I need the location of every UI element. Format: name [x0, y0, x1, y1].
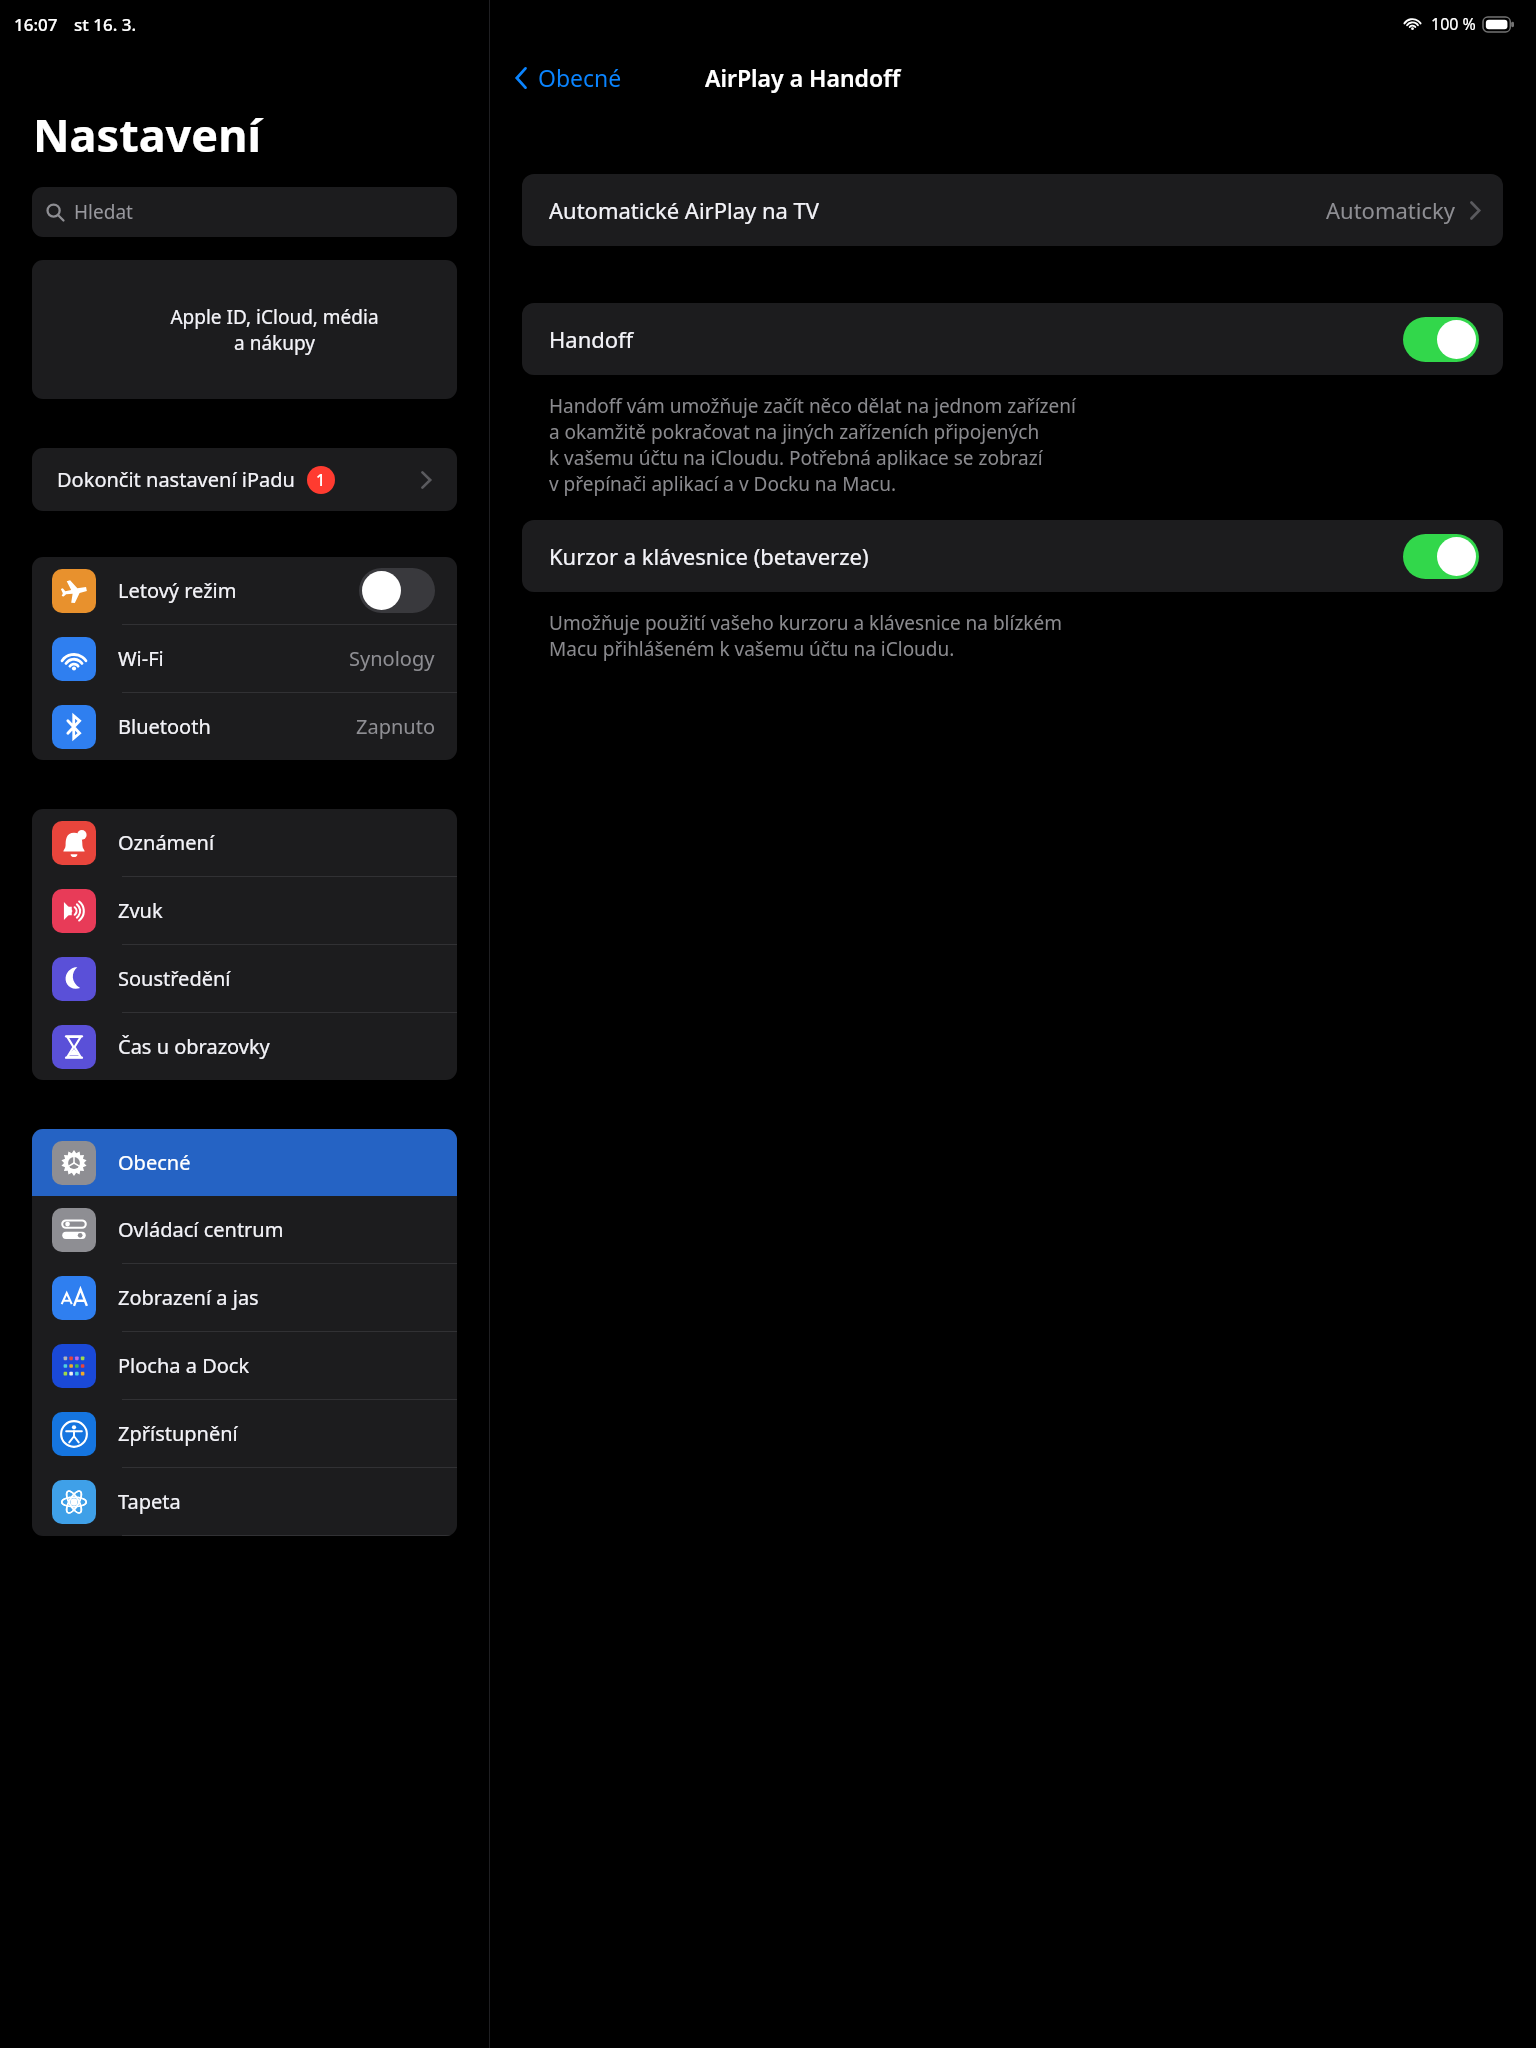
staticText: Zapnuto	[356, 713, 435, 740]
button[interactable]: Soustředění	[32, 945, 457, 1012]
button[interactable]: Plocha a Dock	[32, 1332, 457, 1399]
staticText: Apple ID, iCloud, média a nákupy	[170, 304, 379, 355]
staticText: Ovládací centrum	[118, 1216, 284, 1243]
staticText: Letový režim	[118, 577, 237, 604]
button[interactable]: Hledat	[32, 187, 457, 237]
staticText: Dokončit nastavení iPadu	[57, 466, 295, 493]
staticText: Handoff	[549, 324, 634, 354]
staticText: Synology	[349, 645, 435, 672]
staticText: Soustředění	[118, 965, 231, 992]
staticText: Zvuk	[118, 897, 163, 924]
staticText: 100 %	[1431, 13, 1476, 35]
staticText: Zpřístupnění	[118, 1420, 238, 1447]
button[interactable]: Bluetooth	[32, 693, 457, 760]
staticText: Plocha a Dock	[118, 1352, 250, 1379]
button[interactable]: Ovládací centrum	[32, 1196, 457, 1263]
button[interactable]: Zobrazení a jas	[32, 1264, 457, 1331]
staticText: Wi-Fi	[118, 645, 164, 672]
staticText: Bluetooth	[118, 713, 211, 740]
staticText: st 16. 3.	[74, 13, 137, 36]
button[interactable]: Automatické AirPlay na TV	[522, 174, 1503, 246]
button[interactable]: Obecné	[32, 1129, 457, 1196]
button[interactable]: Toggle on	[1403, 534, 1479, 579]
staticText: 1	[316, 469, 326, 491]
button[interactable]: Zpřístupnění	[32, 1400, 457, 1467]
button[interactable]: Tapeta	[32, 1468, 457, 1535]
staticText: Zobrazení a jas	[118, 1284, 259, 1311]
staticText: Automaticky	[1326, 195, 1455, 225]
button[interactable]: Apple ID, iCloud, média a nákupy	[32, 260, 457, 399]
staticText: 16:07	[14, 13, 58, 36]
staticText: Tapeta	[118, 1488, 181, 1515]
staticText: Umožňuje použití vašeho kurzoru a kláves…	[549, 610, 1062, 662]
button[interactable]: Wi-Fi	[32, 625, 457, 692]
staticText: Obecné	[538, 62, 622, 93]
button[interactable]: Dokončit nastavení iPadu	[32, 448, 457, 511]
staticText: Kurzor a klávesnice (betaverze)	[549, 541, 869, 571]
staticText: Čas u obrazovky	[118, 1033, 270, 1060]
staticText: Handoff vám umožňuje začít něco dělat na…	[549, 393, 1076, 497]
button[interactable]: Obecné	[510, 58, 626, 97]
staticText: Nastavení	[33, 104, 261, 165]
button[interactable]: Zvuk	[32, 877, 457, 944]
button[interactable]: Toggle on	[1403, 317, 1479, 362]
staticText: Obecné	[118, 1149, 191, 1176]
staticText: Automatické AirPlay na TV	[549, 195, 820, 225]
staticText: Oznámení	[118, 829, 215, 856]
button[interactable]: Toggle off	[359, 568, 435, 613]
staticText: Hledat	[74, 199, 133, 225]
staticText: AirPlay a Handoff	[705, 62, 901, 93]
button[interactable]: Oznámení	[32, 809, 457, 876]
button[interactable]: Letový režim	[32, 557, 457, 624]
button[interactable]: Čas u obrazovky	[32, 1013, 457, 1080]
